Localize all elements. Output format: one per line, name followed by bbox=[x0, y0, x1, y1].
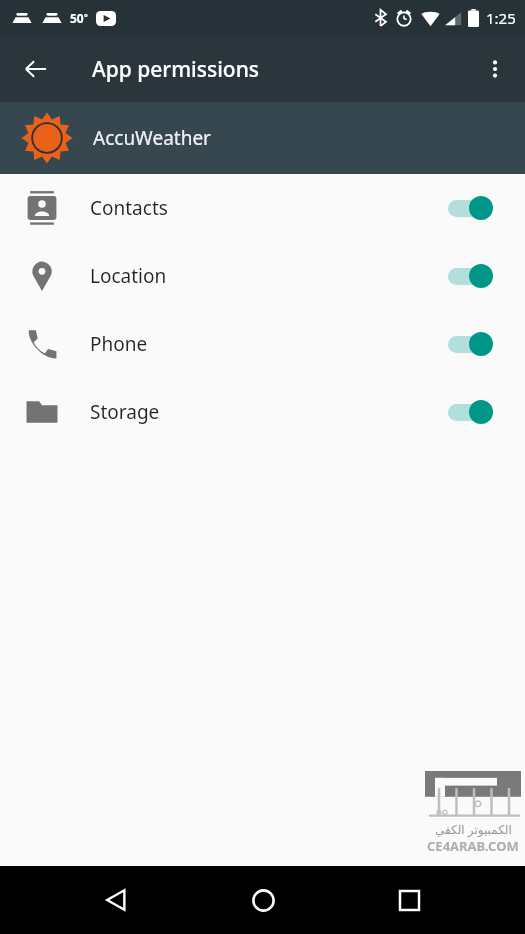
button[interactable]: Toggle permission bbox=[445, 188, 499, 228]
button[interactable]: Home bbox=[232, 869, 294, 931]
button[interactable]: Contacts bbox=[0, 174, 525, 242]
button[interactable]: Phone bbox=[0, 310, 525, 378]
staticText: CE4ARAB.COM bbox=[427, 837, 519, 855]
staticText: 1:25 bbox=[486, 8, 516, 28]
staticText: Storage bbox=[90, 399, 160, 425]
button[interactable]: AccuWeather bbox=[0, 102, 525, 174]
button[interactable]: Toggle permission bbox=[445, 392, 499, 432]
staticText: ° bbox=[84, 10, 88, 22]
staticText: Location bbox=[90, 263, 167, 289]
button[interactable]: Storage bbox=[0, 378, 525, 446]
button[interactable]: Location bbox=[0, 242, 525, 310]
staticText: 50 bbox=[70, 10, 84, 26]
staticText: AccuWeather bbox=[93, 125, 211, 151]
button[interactable]: Back bbox=[85, 869, 147, 931]
button[interactable]: More options bbox=[471, 45, 519, 93]
button[interactable]: Back bbox=[12, 45, 60, 93]
staticText: Phone bbox=[90, 331, 148, 357]
staticText: App permissions bbox=[92, 55, 260, 84]
button[interactable]: Toggle permission bbox=[445, 324, 499, 364]
button[interactable]: Toggle permission bbox=[445, 256, 499, 296]
button[interactable]: Recent apps bbox=[378, 869, 440, 931]
staticText: الكمبيوتر الكفي bbox=[435, 821, 512, 837]
staticText: Contacts bbox=[90, 195, 168, 221]
